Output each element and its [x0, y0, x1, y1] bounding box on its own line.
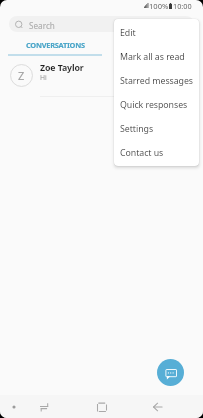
staticText: Hi [40, 73, 47, 82]
staticText: 10:00 [173, 1, 192, 11]
button[interactable]: Hide navigation bar [5, 395, 22, 418]
staticText: Z [18, 68, 25, 83]
button[interactable]: Mark all as read [114, 45, 199, 69]
button[interactable]: Quick responses [114, 93, 199, 117]
staticText: CONVERSATIONS [26, 40, 85, 50]
button[interactable]: Recents [29, 395, 61, 418]
staticText: Contact us [120, 147, 164, 159]
staticText: Starred messages [120, 75, 194, 87]
button[interactable]: Settings [114, 117, 199, 141]
staticText: Settings [120, 123, 154, 135]
staticText: Edit [120, 27, 136, 39]
button[interactable]: Edit [114, 21, 199, 45]
staticText: 100% [149, 1, 169, 11]
staticText: Zoe Taylor [40, 62, 84, 74]
button[interactable]: Starred messages [114, 69, 199, 93]
staticText: Quick responses [120, 99, 188, 111]
button[interactable]: Back [142, 395, 174, 418]
button[interactable]: Home [86, 395, 118, 418]
button[interactable]: Contact us [114, 141, 199, 165]
button[interactable]: Search [9, 16, 194, 32]
button[interactable]: CONVERSATIONS [0, 36, 110, 56]
button[interactable]: New conversation [157, 359, 184, 386]
staticText: Mark all as read [120, 51, 185, 63]
staticText: Search [29, 20, 55, 31]
button[interactable]: Z [0, 57, 203, 93]
